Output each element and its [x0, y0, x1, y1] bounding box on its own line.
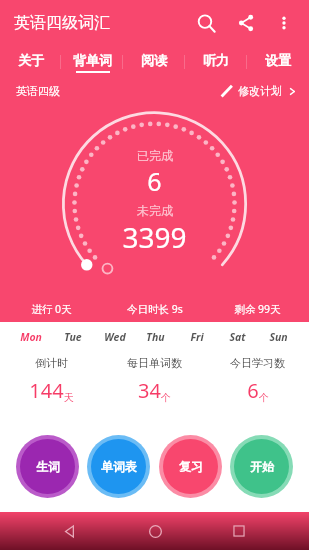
button[interactable]: 生词: [16, 435, 79, 498]
button[interactable]: 修改计划: [220, 84, 297, 98]
staticText: 听力: [203, 52, 229, 68]
button[interactable]: Back: [55, 516, 85, 546]
button[interactable]: 复习: [159, 435, 222, 498]
button[interactable]: Fri: [176, 330, 217, 344]
button[interactable]: 设置: [247, 46, 309, 78]
staticText: 3399: [122, 218, 187, 256]
button[interactable]: 背单词: [61, 46, 123, 78]
button[interactable]: 听力: [185, 46, 247, 78]
staticText: 今日学习数: [230, 356, 285, 370]
staticText: 个: [259, 391, 269, 404]
staticText: 设置: [265, 52, 291, 68]
button[interactable]: Sun: [258, 330, 299, 344]
button[interactable]: 倒计时: [0, 356, 103, 404]
button[interactable]: Sat: [217, 330, 258, 344]
staticText: Wed: [104, 330, 126, 344]
staticText: Sat: [229, 330, 246, 344]
button[interactable]: Tue: [52, 330, 94, 344]
button[interactable]: 单词表: [87, 435, 150, 498]
button[interactable]: 关于: [0, 46, 61, 78]
button[interactable]: 阅读: [123, 46, 185, 78]
staticText: Fri: [190, 330, 204, 344]
button[interactable]: 今日学习数: [206, 356, 309, 404]
button[interactable]: Wed: [94, 330, 135, 344]
staticText: Thu: [146, 330, 165, 344]
staticText: 开始: [250, 459, 274, 474]
staticText: 144: [29, 377, 64, 404]
staticText: 单词表: [101, 459, 137, 474]
staticText: 生词: [36, 459, 60, 474]
staticText: 今日时长 9s: [127, 302, 183, 316]
button[interactable]: 开始: [230, 435, 293, 498]
staticText: 复习: [179, 459, 203, 474]
button[interactable]: 每日单词数: [103, 356, 206, 404]
staticText: 英语四级词汇: [14, 13, 110, 33]
staticText: 阅读: [141, 52, 167, 68]
staticText: 英语四级: [16, 84, 60, 98]
button[interactable]: More options: [267, 6, 301, 40]
staticText: 6: [247, 377, 259, 404]
staticText: 个: [161, 391, 171, 404]
staticText: 34: [138, 377, 161, 404]
button[interactable]: Thu: [135, 330, 176, 344]
staticText: 修改计划: [238, 84, 282, 98]
button[interactable]: Share: [229, 6, 263, 40]
staticText: 关于: [18, 52, 44, 68]
button[interactable]: Recent apps: [224, 516, 254, 546]
button[interactable]: Home: [140, 516, 170, 546]
staticText: 未完成: [137, 203, 173, 218]
staticText: Sun: [269, 330, 288, 344]
staticText: 倒计时: [35, 356, 68, 370]
staticText: 每日单词数: [127, 356, 182, 370]
staticText: Mon: [20, 330, 42, 344]
staticText: 剩余 99天: [234, 302, 281, 316]
button[interactable]: Search: [189, 6, 223, 40]
staticText: 已完成: [137, 148, 173, 163]
staticText: 进行 0天: [31, 302, 72, 316]
staticText: 背单词: [73, 52, 112, 68]
staticText: 6: [147, 164, 162, 198]
staticText: 天: [64, 391, 74, 404]
button[interactable]: Mon: [10, 330, 52, 344]
staticText: Tue: [64, 330, 82, 344]
